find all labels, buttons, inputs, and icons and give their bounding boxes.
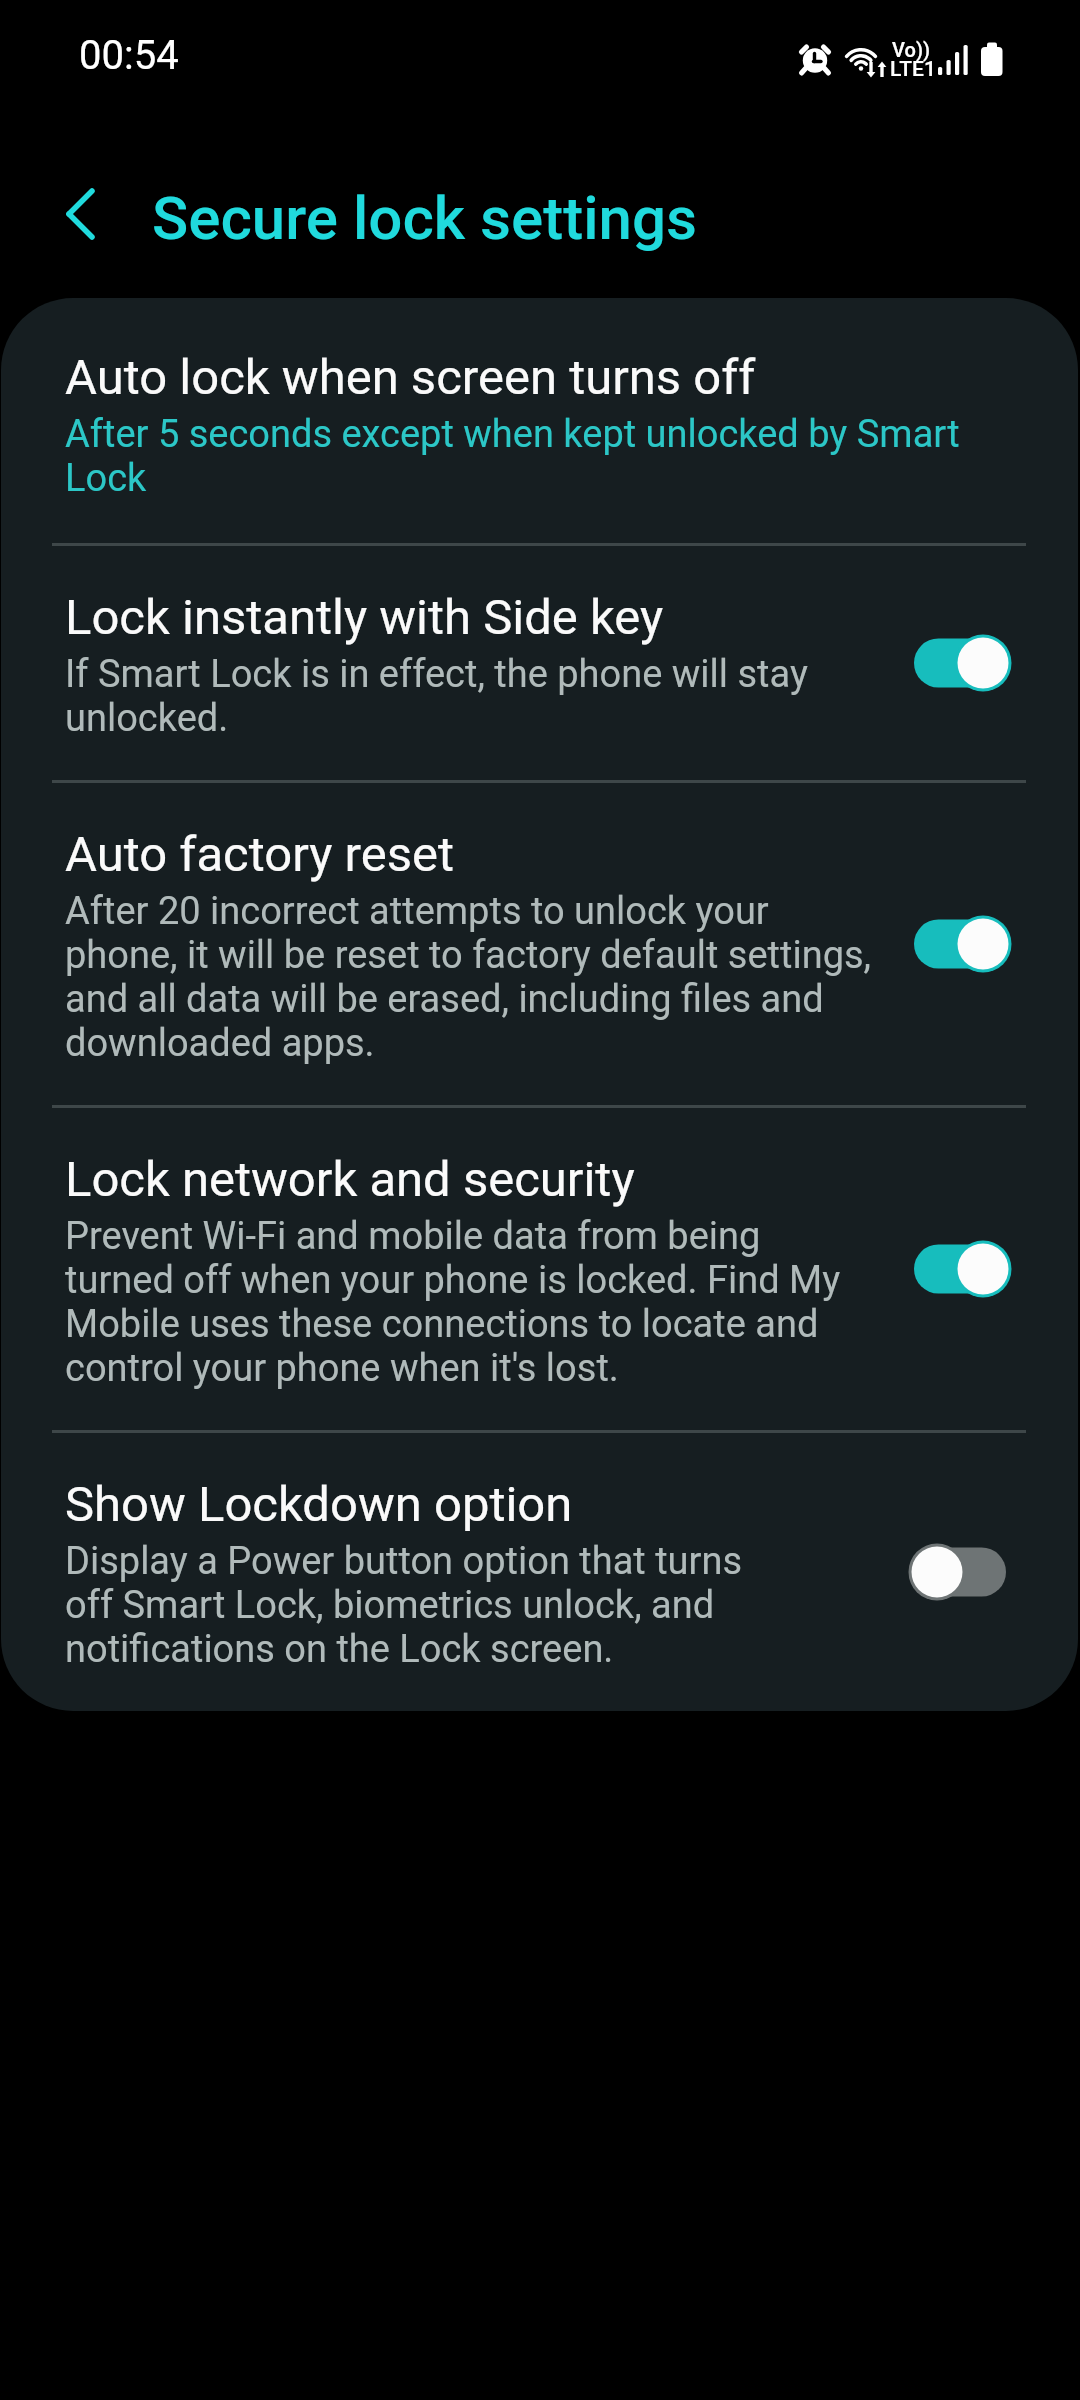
button[interactable]: Navigate up (41, 174, 121, 254)
staticText: Prevent Wi-Fi and mobile data from being… (65, 1214, 841, 1390)
button[interactable]: Show Lockdown option (1, 1433, 1078, 1711)
button[interactable]: Switch on (898, 898, 1022, 990)
button[interactable]: Auto lock when screen turns off (1, 298, 1078, 543)
staticText: 00:54 (79, 32, 179, 79)
staticText: Lock network and security (65, 1151, 635, 1208)
button[interactable]: Lock instantly with Side key (1, 546, 1078, 780)
staticText: Auto lock when screen turns off (65, 349, 756, 406)
button[interactable]: Switch on (898, 617, 1022, 709)
staticText: Secure lock settings (152, 183, 697, 253)
staticText: Display a Power button option that turns… (65, 1539, 743, 1671)
staticText: Auto factory reset (65, 826, 455, 883)
staticText: After 20 incorrect attempts to unlock yo… (65, 889, 872, 1065)
staticText: Lock instantly with Side key (65, 589, 664, 646)
button[interactable]: Lock network and security (1, 1108, 1078, 1430)
button[interactable]: Switch off (898, 1526, 1022, 1618)
staticText: After 5 seconds except when kept unlocke… (65, 412, 960, 500)
button[interactable]: Switch on (898, 1223, 1022, 1315)
staticText: If Smart Lock is in effect, the phone wi… (65, 652, 808, 740)
button[interactable]: Auto factory reset (1, 783, 1078, 1105)
staticText: Show Lockdown option (65, 1476, 573, 1533)
staticText: Vo)) (892, 38, 931, 61)
staticText: LTE1 (890, 57, 936, 82)
